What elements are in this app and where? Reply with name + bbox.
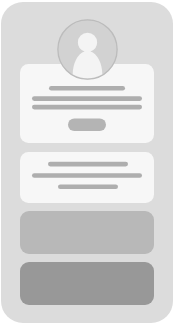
button[interactable]: Profile photo xyxy=(57,19,118,80)
button[interactable] xyxy=(20,64,154,143)
button[interactable] xyxy=(20,211,154,254)
button[interactable] xyxy=(20,262,154,305)
button[interactable] xyxy=(20,152,154,203)
